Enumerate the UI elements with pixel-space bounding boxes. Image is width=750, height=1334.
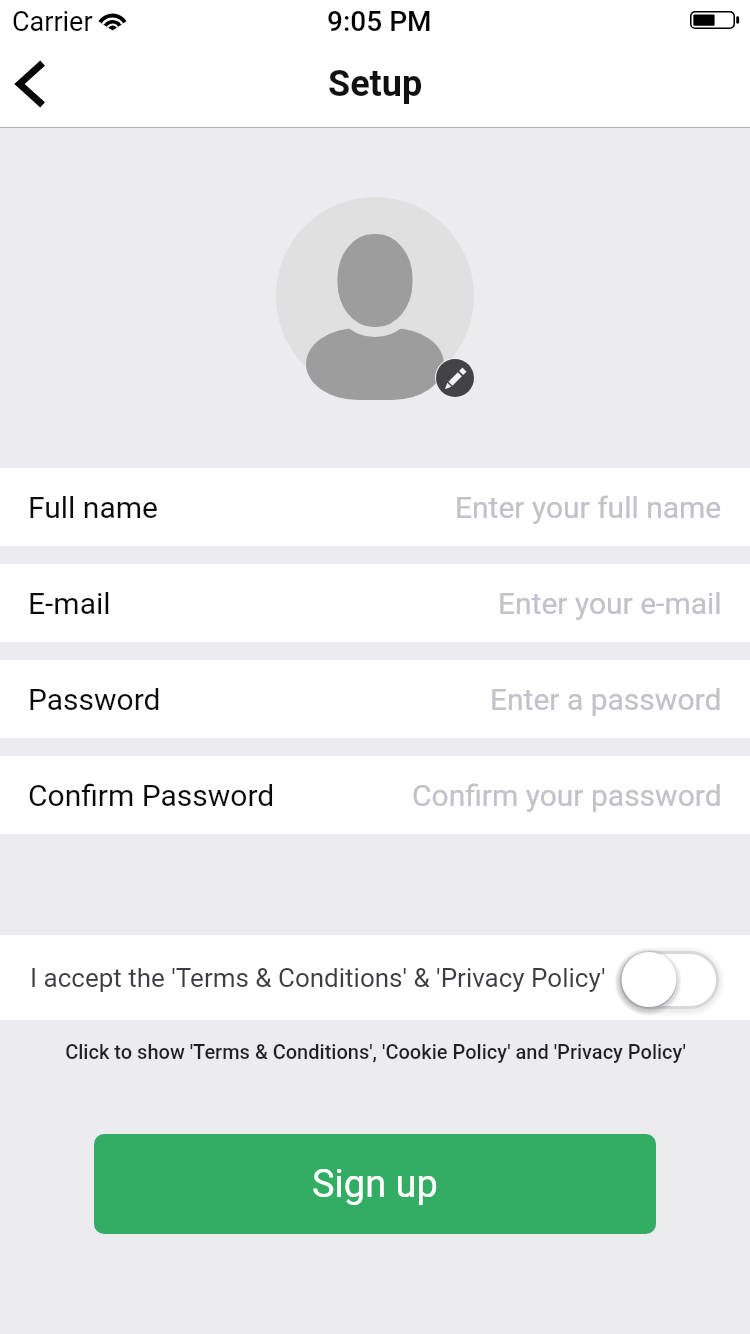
staticText: Click to show 'Terms & Conditions', 'Coo… bbox=[65, 1040, 686, 1063]
button[interactable]: I accept the 'Terms & Conditions' & 'Pri… bbox=[0, 935, 750, 1020]
button[interactable]: Full name bbox=[0, 468, 750, 546]
staticText: 9:05 PM bbox=[327, 5, 432, 38]
staticText: Confirm Password bbox=[28, 778, 275, 813]
staticText: Enter your e-mail bbox=[498, 586, 722, 621]
button[interactable]: Edit profile photo bbox=[436, 359, 474, 397]
button[interactable]: Back bbox=[0, 44, 62, 128]
button[interactable]: Confirm Password bbox=[0, 756, 750, 834]
button[interactable]: E-mail bbox=[0, 564, 750, 642]
button[interactable]: Click to show 'Terms & Conditions', 'Coo… bbox=[0, 1020, 750, 1088]
staticText: Full name bbox=[28, 490, 158, 525]
staticText: Password bbox=[28, 682, 161, 717]
staticText: Enter your full name bbox=[455, 490, 722, 525]
staticText: Sign up bbox=[312, 1162, 438, 1207]
staticText: Confirm your password bbox=[412, 778, 722, 813]
staticText: Enter a password bbox=[490, 682, 722, 717]
staticText: Carrier bbox=[12, 6, 93, 38]
button[interactable]: Accept terms and conditions bbox=[620, 951, 719, 1009]
button[interactable]: Sign up bbox=[94, 1134, 656, 1234]
button[interactable]: Password bbox=[0, 660, 750, 738]
staticText: E-mail bbox=[28, 586, 111, 621]
staticText: Setup bbox=[328, 63, 423, 105]
staticText: I accept the 'Terms & Conditions' & 'Pri… bbox=[30, 963, 606, 993]
